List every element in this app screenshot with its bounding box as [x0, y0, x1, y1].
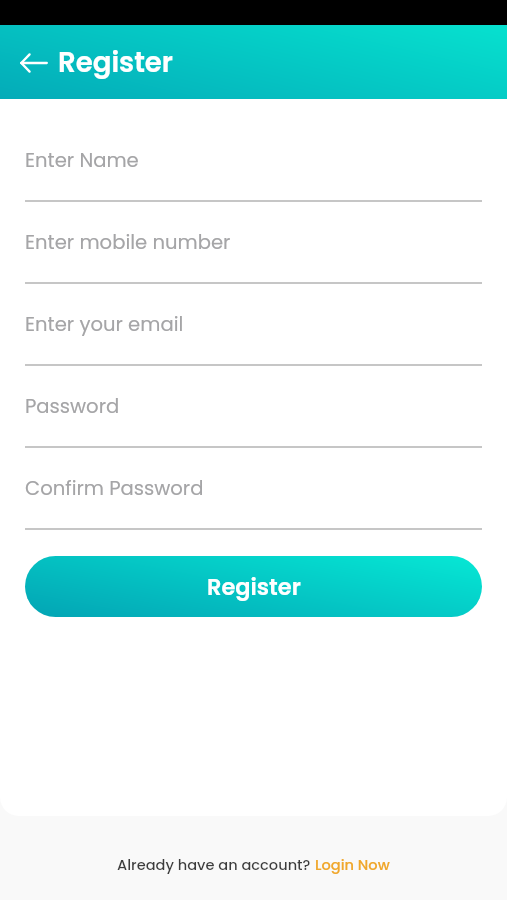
staticText: Register: [207, 571, 301, 602]
staticText: Confirm Password: [25, 474, 204, 501]
button[interactable]: Login Now: [315, 855, 390, 875]
button[interactable]: Password: [25, 399, 482, 448]
button[interactable]: Enter Name: [25, 153, 482, 202]
button[interactable]: Register: [25, 556, 482, 617]
staticText: Already have an account?: [117, 855, 315, 875]
button[interactable]: Enter your email: [25, 317, 482, 366]
staticText: Enter mobile number: [25, 228, 231, 255]
staticText: Enter Name: [25, 146, 139, 173]
staticText: Enter your email: [25, 310, 184, 337]
button[interactable]: Confirm Password: [25, 481, 482, 530]
staticText: Password: [25, 392, 120, 419]
staticText: Register: [58, 43, 174, 82]
button[interactable]: Enter mobile number: [25, 235, 482, 284]
button[interactable]: Back: [11, 40, 57, 86]
